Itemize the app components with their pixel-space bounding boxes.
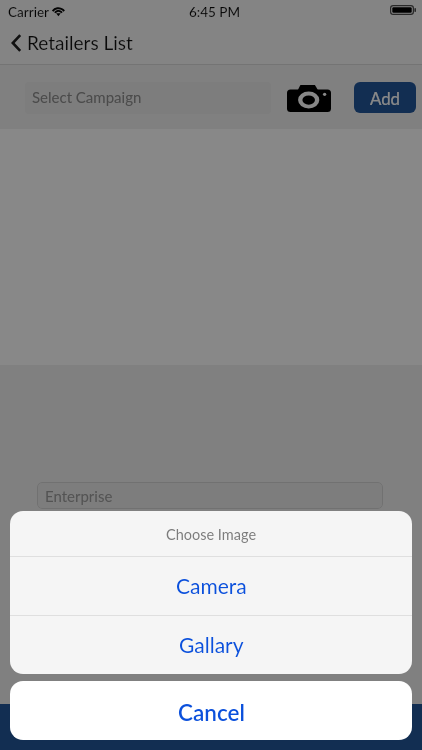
button[interactable]: Take photo — [281, 79, 337, 117]
staticText: Retailers List — [27, 31, 133, 54]
staticText: Choose Image — [166, 526, 257, 543]
button[interactable]: Select Campaign — [25, 82, 271, 114]
staticText: Camera — [176, 573, 247, 598]
staticText: Cancel — [178, 699, 245, 726]
staticText: Enterprise — [45, 487, 113, 505]
button[interactable]: Camera — [10, 557, 412, 615]
button[interactable]: Gallary — [10, 616, 412, 674]
staticText: Carrier — [8, 4, 50, 20]
button[interactable]: Add — [354, 82, 416, 113]
staticText: 6:45 PM — [189, 4, 241, 20]
staticText: Select Campaign — [32, 88, 142, 106]
button[interactable]: Retailers List — [0, 29, 143, 60]
staticText: Add — [370, 88, 400, 108]
button[interactable]: Cancel — [10, 681, 412, 740]
staticText: Gallary — [179, 632, 244, 657]
